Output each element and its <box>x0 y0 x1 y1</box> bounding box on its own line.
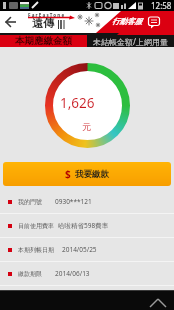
button[interactable]: 行動客服 <box>112 17 142 26</box>
button[interactable]: 未結帳金額/上網用量 <box>87 35 174 47</box>
staticText: 2014/05/25 <box>62 245 97 254</box>
staticText: 繳款期限 <box>18 270 42 278</box>
staticText: 本期列帳日期 <box>18 246 54 254</box>
button[interactable]: 本期應繳金額 <box>0 35 87 47</box>
staticText: 遠傳 <box>32 16 54 30</box>
staticText: 行動客服 <box>112 17 142 26</box>
button[interactable] <box>144 290 174 310</box>
staticText: 未結帳金額/上網用量 <box>93 36 168 47</box>
staticText: 2014/06/13 <box>55 269 90 278</box>
button[interactable]: 本期列帳日期 <box>0 238 174 262</box>
staticText: FarEasTone <box>28 12 66 18</box>
staticText: 我的門號 <box>18 198 42 206</box>
staticText: 目前使用費率 <box>18 222 54 230</box>
button[interactable]: 我的門號 <box>0 190 174 214</box>
staticText: 0930***121 <box>55 197 92 206</box>
button[interactable]: 目前使用費率 <box>0 214 174 238</box>
button[interactable]: $ <box>3 162 171 186</box>
staticText: 1,626 <box>60 94 95 112</box>
staticText: 12:58 <box>151 0 172 11</box>
staticText: $ <box>65 167 71 181</box>
button[interactable]: 繳款期限 <box>0 262 174 286</box>
staticText: 我要繳款 <box>75 169 109 180</box>
button[interactable]: FarEasTone <box>28 12 66 18</box>
staticText: 哈啦精省598費率 <box>58 221 109 230</box>
staticText: 本期應繳金額 <box>15 35 72 47</box>
staticText: 元 <box>82 121 91 132</box>
